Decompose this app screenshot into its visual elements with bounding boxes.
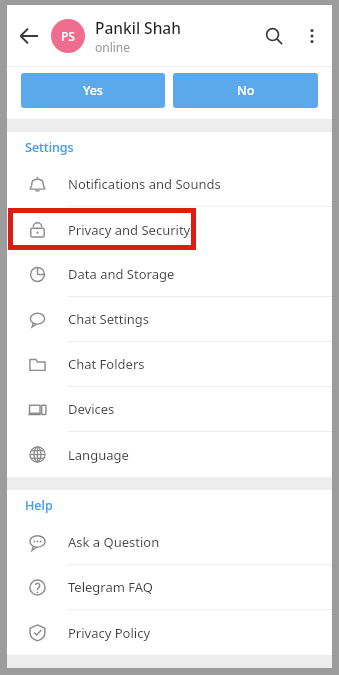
staticText: No: [237, 82, 255, 99]
button[interactable]: More options: [294, 18, 330, 54]
staticText: Yes: [83, 82, 103, 99]
button[interactable]: Yes: [21, 73, 165, 108]
staticText: Help: [25, 497, 53, 514]
button[interactable]: Devices: [7, 387, 332, 431]
button[interactable]: Privacy Policy: [7, 610, 332, 655]
button[interactable]: Notifications and Sounds: [7, 162, 332, 206]
staticText: Privacy Policy: [68, 624, 151, 642]
button[interactable]: No: [173, 73, 318, 108]
staticText: Devices: [68, 400, 115, 418]
staticText: Language: [68, 446, 129, 464]
staticText: Telegram FAQ: [68, 578, 153, 596]
staticText: PS: [61, 28, 75, 44]
staticText: Data and Storage: [68, 265, 175, 283]
button[interactable]: Search: [254, 16, 294, 56]
button[interactable]: Privacy and Security: [7, 207, 332, 252]
button[interactable]: Chat Settings: [7, 297, 332, 341]
staticText: online: [95, 39, 131, 55]
button[interactable]: Telegram FAQ: [7, 565, 332, 609]
staticText: Chat Settings: [68, 310, 150, 328]
staticText: Ask a Question: [68, 533, 160, 551]
button[interactable]: Language: [7, 432, 332, 477]
staticText: Settings: [25, 139, 74, 156]
staticText: Pankil Shah: [95, 17, 181, 38]
button[interactable]: Back: [7, 14, 51, 58]
button[interactable]: Data and Storage: [7, 252, 332, 296]
button[interactable]: Chat Folders: [7, 342, 332, 386]
button[interactable]: Ask a Question: [7, 520, 332, 564]
staticText: Notifications and Sounds: [68, 175, 221, 193]
staticText: Privacy and Security: [68, 221, 191, 239]
staticText: Chat Folders: [68, 355, 145, 373]
